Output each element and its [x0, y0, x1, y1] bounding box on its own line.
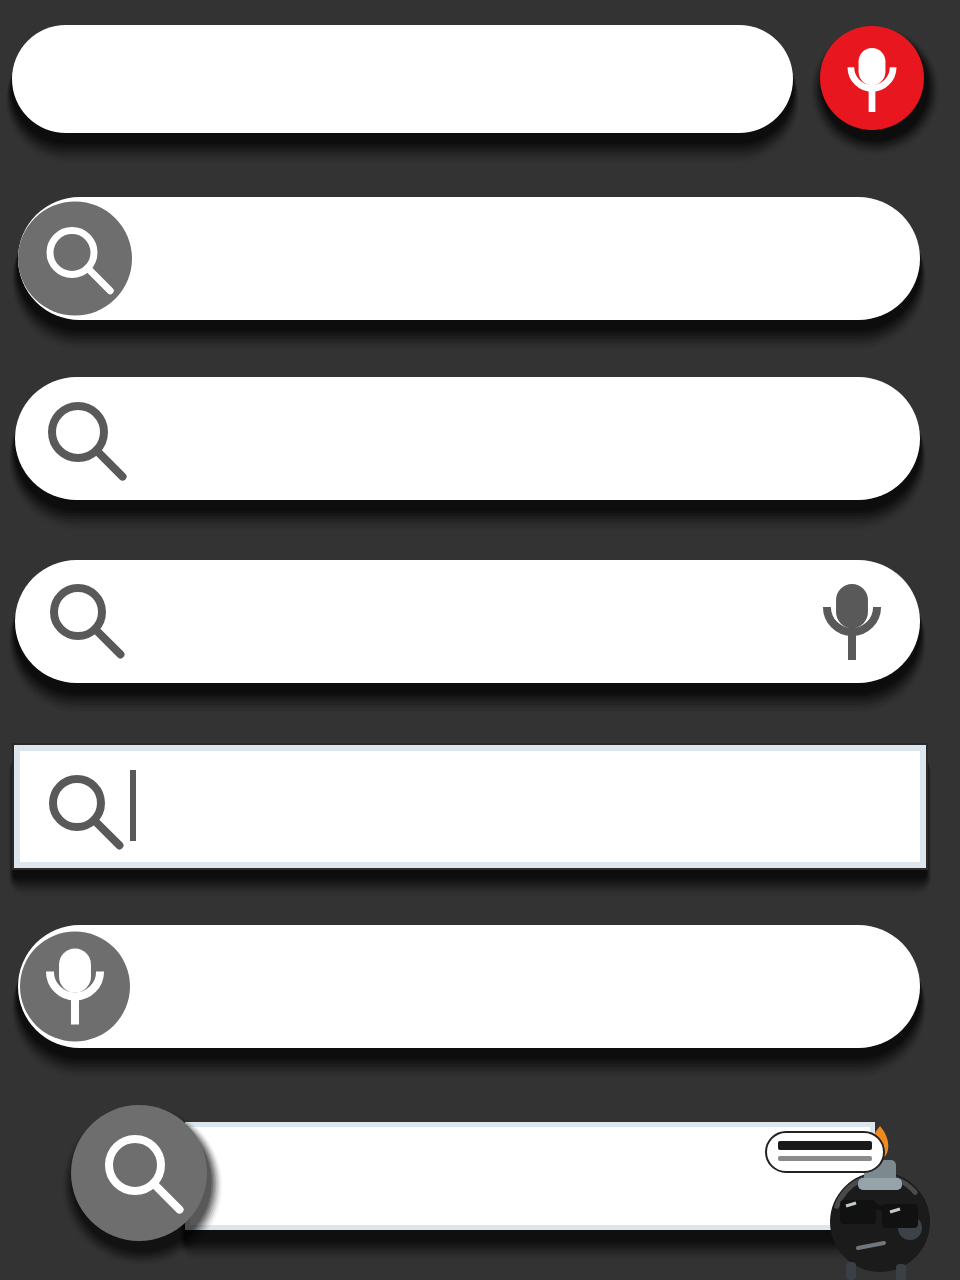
button[interactable]: [71, 1105, 875, 1242]
button[interactable]: [15, 377, 920, 500]
button[interactable]: [15, 560, 920, 683]
button[interactable]: Voice search: [820, 26, 924, 130]
button[interactable]: [18, 197, 920, 320]
button[interactable]: [14, 745, 926, 868]
button[interactable]: [18, 925, 920, 1048]
button[interactable]: [12, 25, 793, 133]
